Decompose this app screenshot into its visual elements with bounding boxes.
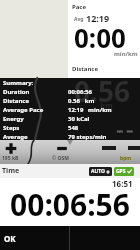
staticText: Distance bbox=[3, 97, 29, 105]
button[interactable]: Zoom in bbox=[3, 142, 19, 155]
staticText: Energy bbox=[3, 115, 24, 123]
button[interactable]: AUTO bbox=[91, 167, 110, 176]
staticText: © OSM bbox=[52, 155, 69, 162]
button[interactable]: GPS bbox=[116, 167, 132, 176]
staticText: 0:00 bbox=[74, 20, 126, 55]
staticText: Average Pace bbox=[3, 106, 44, 114]
staticText: Time bbox=[2, 166, 20, 176]
staticText: Distance bbox=[72, 65, 98, 73]
staticText: min/km bbox=[114, 50, 138, 58]
staticText: Pace bbox=[72, 3, 86, 11]
staticText: Average bbox=[3, 133, 28, 141]
staticText: 195 kB bbox=[2, 155, 19, 162]
button[interactable]: 16:51 bbox=[0, 178, 140, 226]
staticText: 16:51 bbox=[112, 178, 133, 189]
staticText: km bbox=[100, 100, 113, 111]
staticText: OK bbox=[4, 233, 16, 244]
staticText: 12:19 bbox=[86, 12, 110, 24]
button[interactable]: OK bbox=[0, 226, 69, 250]
button[interactable]: Pace bbox=[68, 0, 140, 62]
staticText: 0.56 km bbox=[68, 97, 95, 105]
staticText: Duration bbox=[3, 88, 30, 96]
button[interactable]: Zoom out bbox=[54, 142, 70, 155]
staticText: bpm bbox=[120, 155, 132, 162]
staticText: 79 steps/min bbox=[68, 133, 107, 141]
staticText: Summary: bbox=[3, 79, 34, 87]
staticText: 12:19 min/km bbox=[68, 106, 112, 114]
staticText: Steps bbox=[3, 124, 20, 132]
staticText: 0.56 bbox=[74, 72, 130, 110]
staticText: 00:06:56 bbox=[0, 184, 140, 225]
staticText: Avg bbox=[74, 16, 84, 23]
staticText: AUTO bbox=[91, 168, 105, 175]
staticText: 30 kCal bbox=[68, 115, 90, 123]
staticText: GPS bbox=[116, 168, 126, 175]
button[interactable]: Distance bbox=[68, 62, 140, 78]
staticText: 00:06:56 bbox=[68, 88, 92, 96]
staticText: 548 bbox=[68, 124, 79, 132]
